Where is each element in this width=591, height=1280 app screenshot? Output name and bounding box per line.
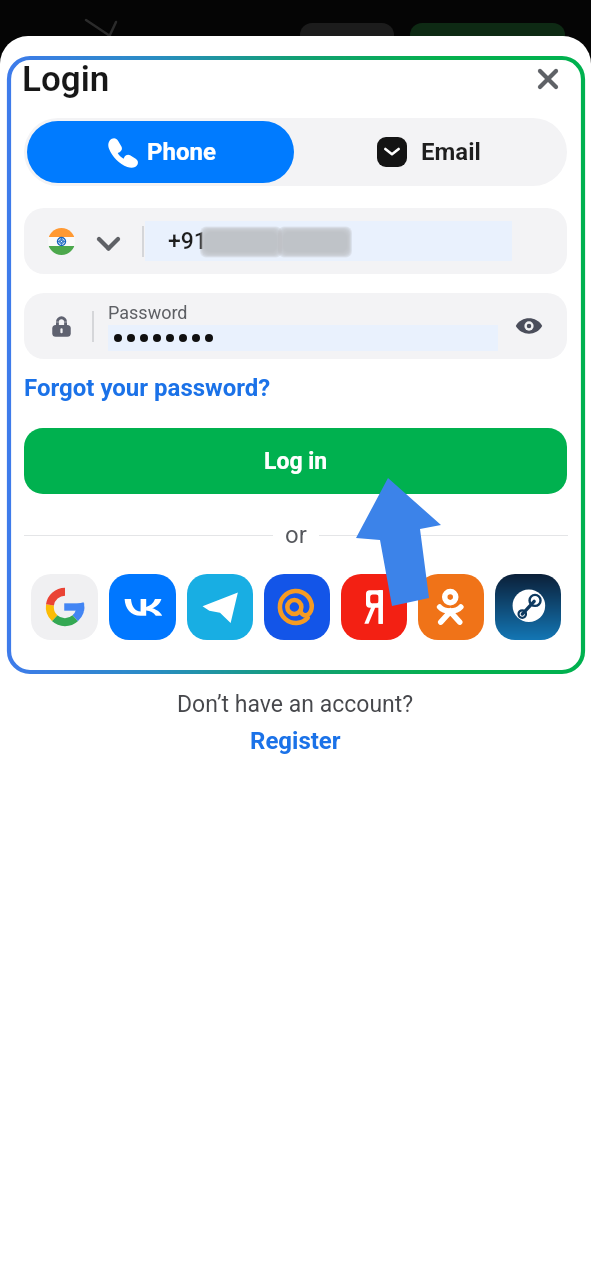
button[interactable]: Log in <box>24 428 567 494</box>
button[interactable]: Sign in with Steam <box>495 574 561 640</box>
button[interactable]: Sign in with Yandex <box>341 574 407 640</box>
staticText: Log in <box>264 448 328 475</box>
staticText: Password <box>108 302 188 323</box>
staticText: or <box>285 521 307 549</box>
staticText: Phone <box>147 138 216 166</box>
staticText: Email <box>421 138 481 166</box>
button[interactable]: Show password <box>503 300 555 352</box>
staticText: Login <box>22 59 110 100</box>
button[interactable]: Close <box>524 55 572 103</box>
button[interactable]: Email <box>294 121 564 183</box>
button[interactable]: Phone <box>27 121 294 183</box>
button[interactable]: Sign in with Telegram <box>187 574 253 640</box>
button[interactable]: Register <box>250 727 341 755</box>
button[interactable]: Sign in with Mail.ru <box>264 574 330 640</box>
staticText: Register <box>250 727 341 755</box>
staticText: +91 <box>168 228 207 255</box>
staticText: Don’t have an account? <box>177 691 414 718</box>
staticText: Forgot your password? <box>24 374 271 402</box>
button[interactable]: Sign in with Google <box>31 574 98 640</box>
button[interactable]: Sign in with VK <box>109 574 176 640</box>
button[interactable]: Sign in with Odnoklassniki <box>418 574 484 640</box>
button[interactable]: +91 <box>24 208 567 274</box>
button[interactable]: Forgot your password? <box>24 374 271 402</box>
